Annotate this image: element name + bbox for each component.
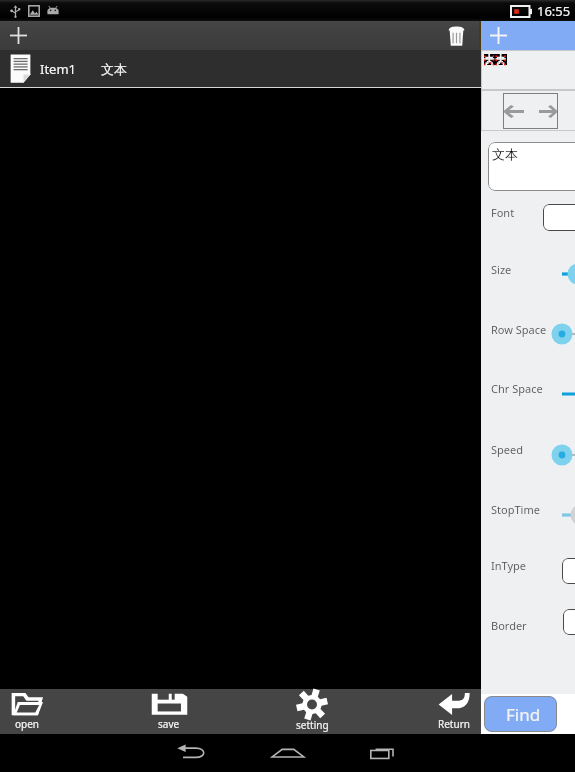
- staticText: Size: [491, 262, 512, 277]
- button[interactable]: Slider: [541, 258, 575, 290]
- staticText: 文本: [101, 61, 127, 77]
- staticText: open: [15, 717, 40, 731]
- button[interactable]: setting: [285, 689, 339, 734]
- button[interactable]: 文本: [488, 142, 575, 191]
- staticText: Chr Space: [491, 381, 543, 396]
- button[interactable]: Recents: [336, 734, 432, 772]
- button[interactable]: open: [0, 689, 54, 734]
- button[interactable]: Find: [484, 696, 557, 732]
- staticText: InType: [491, 558, 527, 573]
- button[interactable]: Choose option: [562, 558, 575, 584]
- button[interactable]: Add item: [481, 21, 575, 50]
- button[interactable]: Move text: [503, 93, 558, 129]
- button[interactable]: Return: [427, 689, 481, 734]
- staticText: Speed: [491, 442, 523, 457]
- button[interactable]: Choose option: [543, 204, 575, 231]
- button[interactable]: save: [142, 689, 196, 734]
- staticText: Border: [491, 618, 527, 633]
- button[interactable]: Back: [144, 734, 240, 772]
- staticText: Return: [438, 717, 470, 731]
- button[interactable]: Slider: [541, 378, 575, 410]
- button[interactable]: Slider: [541, 439, 575, 471]
- button[interactable]: Add: [0, 21, 37, 50]
- staticText: Row Space: [491, 322, 547, 337]
- staticText: 文本: [492, 146, 518, 162]
- staticText: Font: [491, 205, 515, 220]
- staticText: 16:55: [537, 2, 571, 20]
- button[interactable]: Delete: [443, 23, 469, 49]
- staticText: Find: [506, 703, 541, 726]
- button[interactable]: Item1: [0, 50, 481, 87]
- button[interactable]: Choose option: [563, 609, 575, 635]
- button[interactable]: Slider: [541, 318, 575, 350]
- button[interactable]: Slider: [541, 499, 575, 531]
- staticText: save: [158, 717, 180, 731]
- button[interactable]: Home: [240, 734, 336, 772]
- staticText: StopTime: [491, 502, 540, 517]
- staticText: Item1: [40, 60, 77, 78]
- staticText: setting: [296, 718, 329, 732]
